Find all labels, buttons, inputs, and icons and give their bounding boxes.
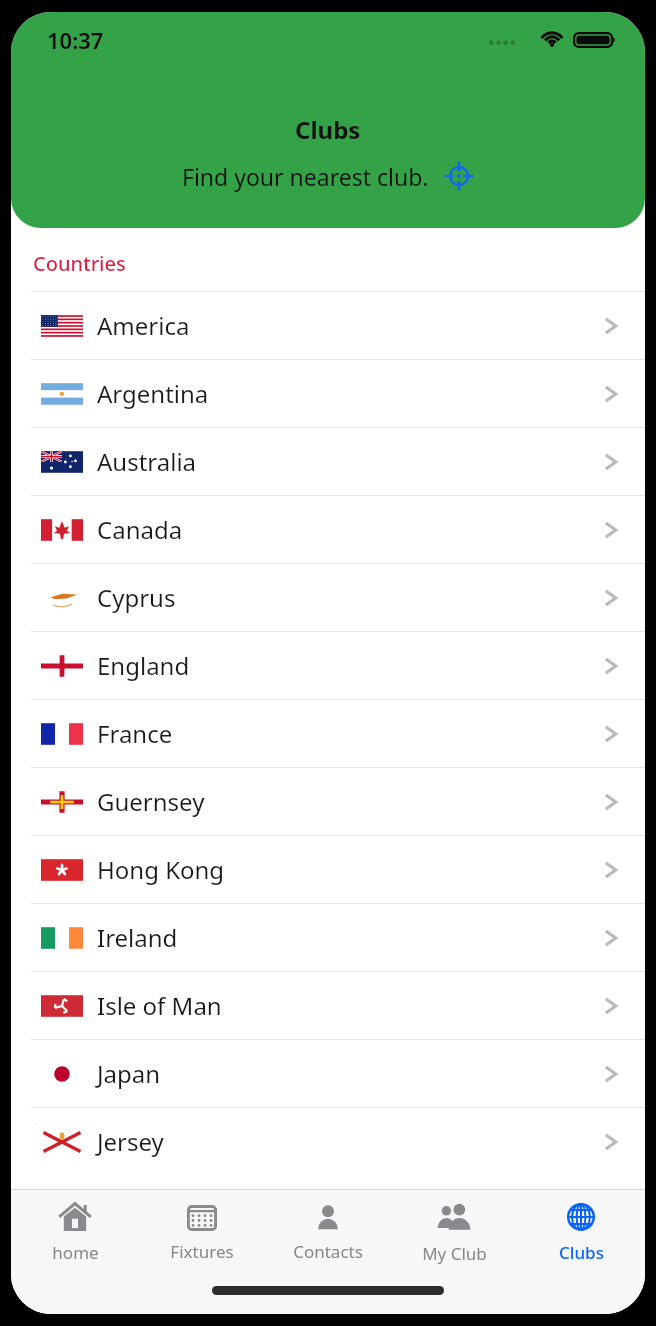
- staticText: Hong Kong: [97, 853, 225, 886]
- staticText: Fixtures: [170, 1240, 234, 1263]
- staticText: Jersey: [97, 1125, 164, 1158]
- button[interactable]: Clubs: [519, 1196, 643, 1268]
- button[interactable]: England: [11, 632, 645, 699]
- staticText: Isle of Man: [97, 989, 222, 1022]
- staticText: Clubs: [295, 113, 361, 146]
- staticText: My Club: [422, 1242, 487, 1265]
- button[interactable]: Find nearest club: [443, 160, 475, 192]
- button[interactable]: Japan: [11, 1040, 645, 1107]
- button[interactable]: France: [11, 700, 645, 767]
- staticText: Argentina: [97, 377, 209, 410]
- button[interactable]: Guernsey: [11, 768, 645, 835]
- button[interactable]: Argentina: [11, 360, 645, 427]
- staticText: home: [52, 1241, 99, 1264]
- staticText: Canada: [97, 513, 183, 546]
- button[interactable]: Cyprus: [11, 564, 645, 631]
- staticText: Contacts: [293, 1240, 363, 1263]
- staticText: Ireland: [97, 921, 178, 954]
- button[interactable]: Ireland: [11, 904, 645, 971]
- button[interactable]: Jersey: [11, 1108, 645, 1175]
- staticText: Countries: [33, 250, 126, 277]
- staticText: 10:37: [47, 25, 104, 55]
- staticText: Cyprus: [97, 581, 176, 614]
- staticText: Find your nearest club.: [182, 161, 429, 192]
- staticText: Clubs: [559, 1241, 604, 1264]
- staticText: Japan: [97, 1057, 161, 1090]
- button[interactable]: Contacts: [266, 1197, 390, 1267]
- button[interactable]: My Club: [392, 1195, 516, 1269]
- button[interactable]: America: [11, 292, 645, 359]
- button[interactable]: Australia: [11, 428, 645, 495]
- staticText: England: [97, 649, 190, 682]
- button[interactable]: Fixtures: [140, 1197, 264, 1267]
- button[interactable]: Canada: [11, 496, 645, 563]
- staticText: Guernsey: [97, 785, 205, 818]
- staticText: France: [97, 717, 173, 750]
- staticText: Australia: [97, 445, 197, 478]
- button[interactable]: Hong Kong: [11, 836, 645, 903]
- button[interactable]: Isle of Man: [11, 972, 645, 1039]
- button[interactable]: home: [13, 1196, 137, 1268]
- staticText: America: [97, 309, 190, 342]
